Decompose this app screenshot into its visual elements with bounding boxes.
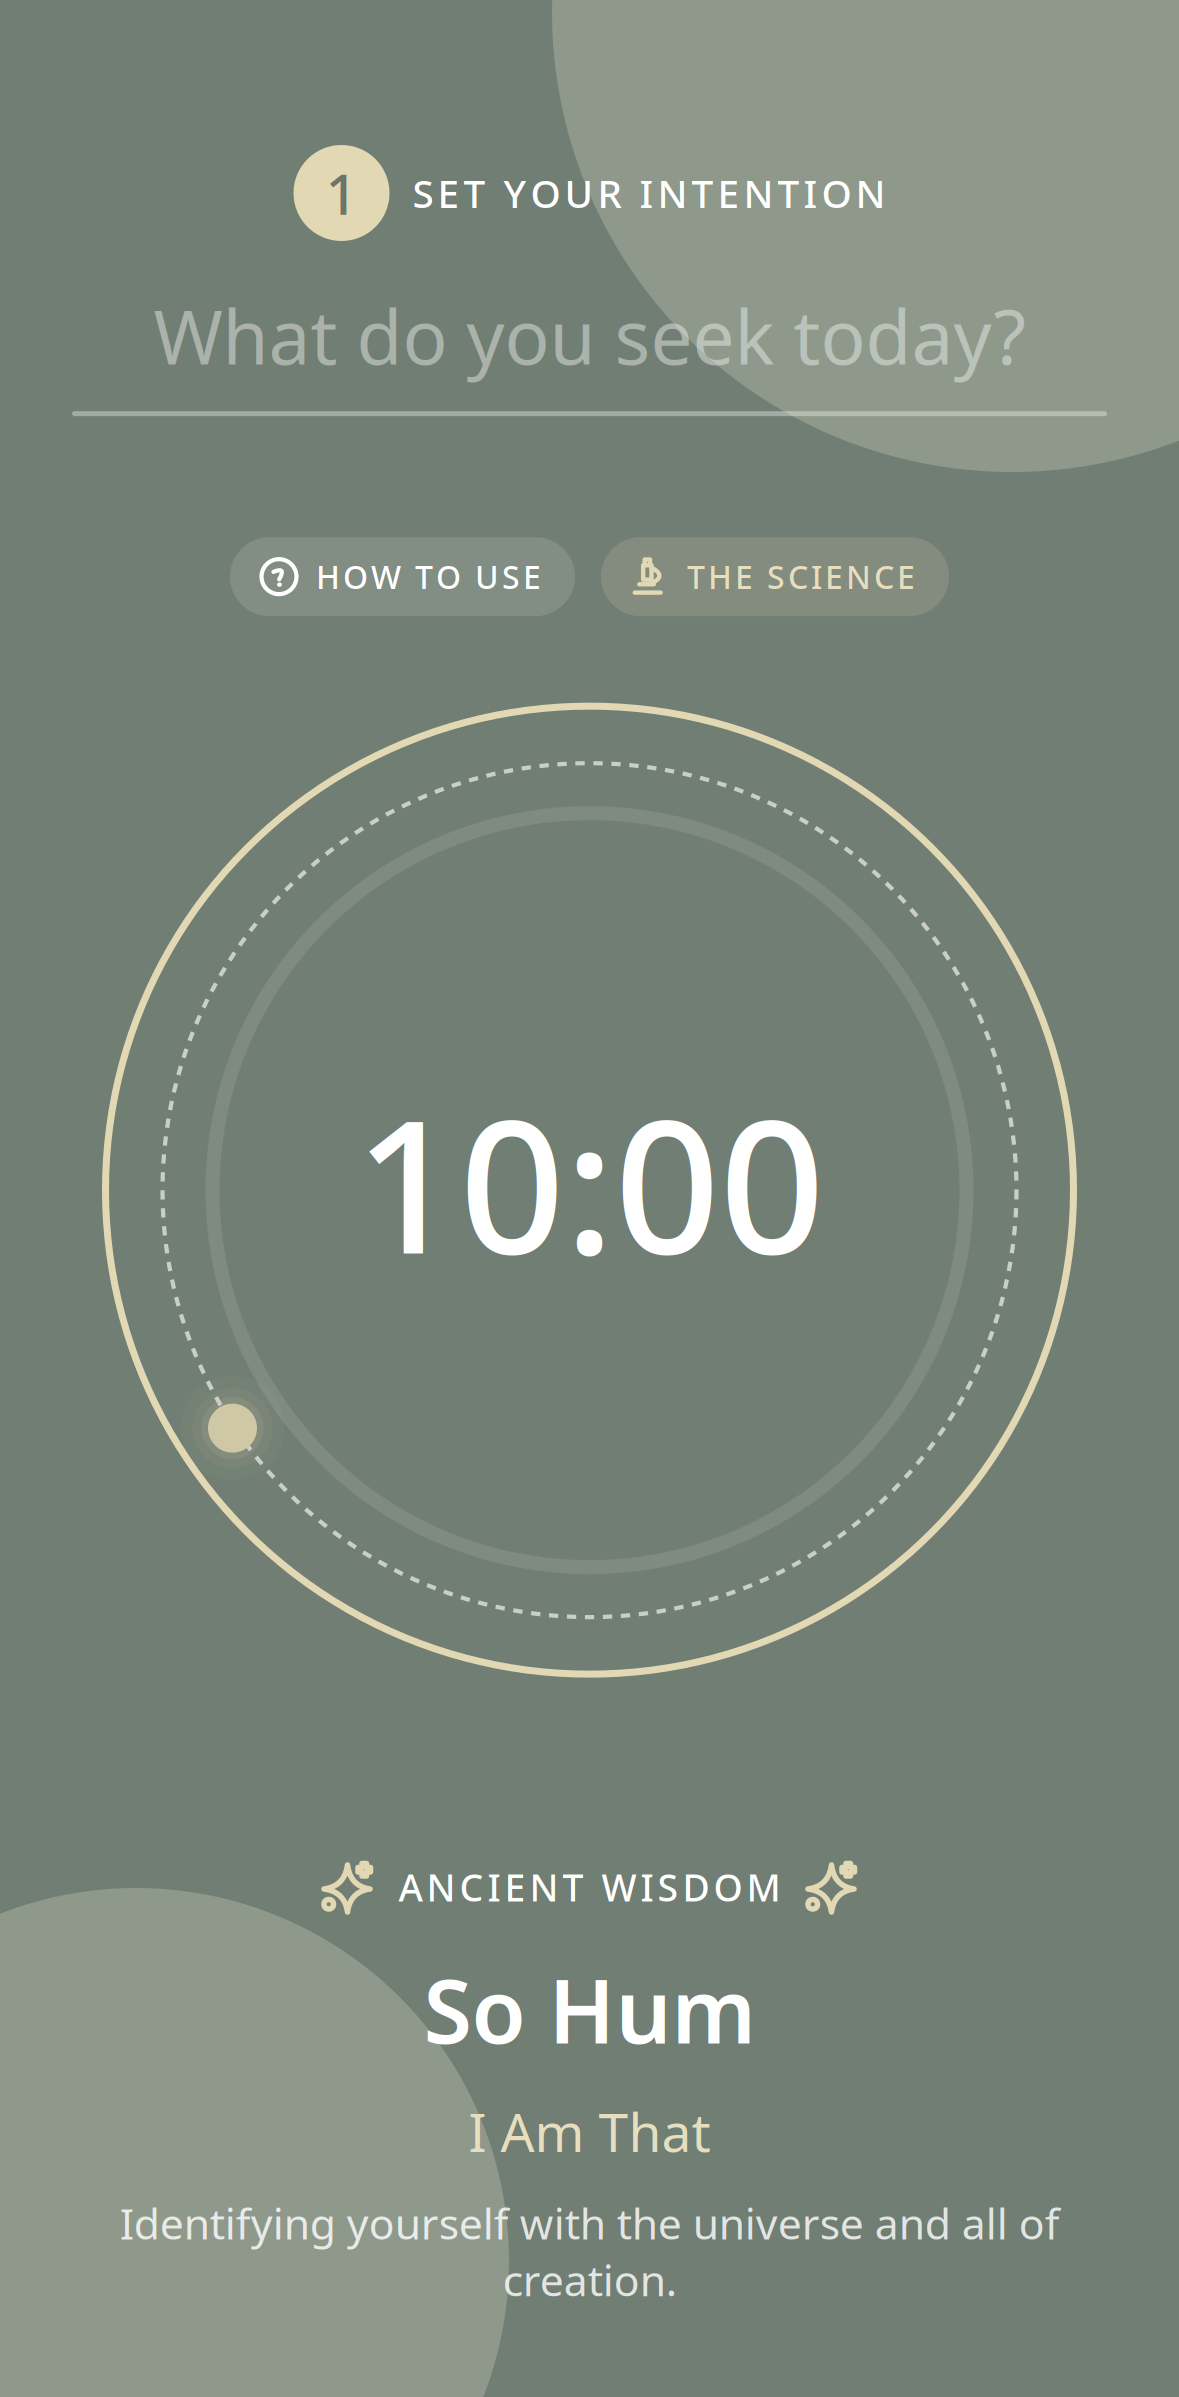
staticText: A N C I E N T W I S D O M [398, 1862, 780, 1912]
button[interactable]: T H E S C I E N C E [601, 537, 949, 616]
staticText: I Am That [468, 2096, 710, 2167]
staticText: So Hum [423, 1951, 755, 2068]
staticText: 1 [325, 156, 357, 230]
staticText: What do you seek today? [153, 286, 1025, 385]
staticText: H O W T O U S E [316, 555, 541, 598]
staticText: T H E S C I E N C E [687, 555, 915, 598]
staticText: S E T Y O U R I N T E N T I O N [412, 167, 885, 219]
staticText: 10:00 [354, 1060, 824, 1304]
button[interactable]: H O W T O U S E [230, 537, 575, 616]
staticText: Identifying yourself with the universe a… [119, 2195, 1059, 2308]
